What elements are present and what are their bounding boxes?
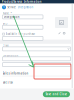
staticText: Integration xyxy=(18,5,34,9)
staticText: Product/Service Information xyxy=(2,0,42,3)
staticText: Save and Close xyxy=(45,92,67,96)
staticText: Name * xyxy=(2,12,11,15)
staticText: Available for purchase xyxy=(6,32,36,36)
staticText: Class xyxy=(2,44,8,47)
staticText: Service xyxy=(7,5,16,9)
staticText: Sales information xyxy=(2,72,28,75)
button[interactable]: Save and Close xyxy=(43,91,70,97)
staticText: Description xyxy=(2,54,18,58)
staticText: 1 xyxy=(3,5,5,9)
staticText: Integration xyxy=(4,15,20,19)
staticText: SKU xyxy=(2,22,7,25)
staticText: Sales tax xyxy=(2,81,12,84)
